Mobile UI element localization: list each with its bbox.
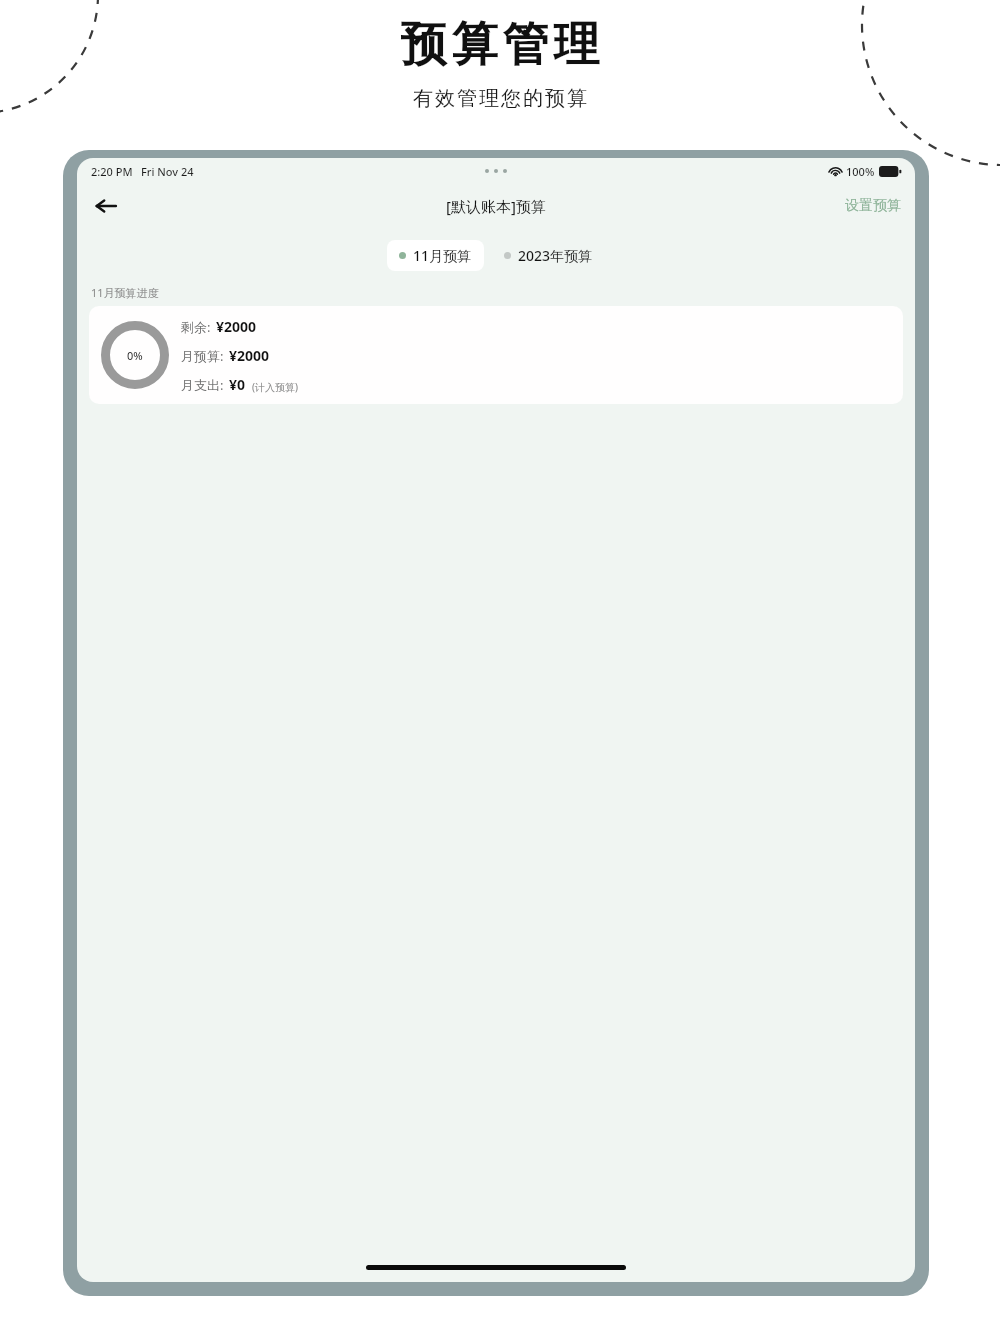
staticText: 设置预算 [845,197,901,215]
staticText: ¥0 [229,375,246,394]
button[interactable]: 11月预算 [387,240,484,271]
button[interactable]: Back [85,185,127,227]
staticText: [默认账本]预算 [446,196,546,216]
staticText: 有效管理您的预算 [412,86,588,111]
staticText: 11月预算 [413,246,472,265]
staticText: 100% [846,164,875,179]
staticText: ¥2000 [229,346,270,365]
staticText: 剩余: [181,318,211,336]
staticText: 0% [127,348,143,363]
staticText: 预算管理 [398,16,602,74]
staticText: (计入预算) [252,380,298,394]
staticText: 11月预算进度 [91,285,159,300]
staticText: 月支出: [181,376,224,394]
button[interactable]: 2023年预算 [492,240,605,271]
button[interactable]: 设置预算 [831,189,915,223]
staticText: 月预算: [181,347,224,365]
button[interactable]: 0% [89,306,903,404]
staticText: 2:20 PM [91,164,133,179]
staticText: Fri Nov 24 [141,164,194,179]
staticText: ¥2000 [216,317,257,336]
staticText: 2023年预算 [518,246,593,265]
